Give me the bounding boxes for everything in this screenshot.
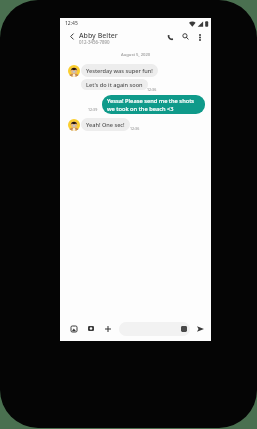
button[interactable]: Yeah! One sec! — [81, 118, 130, 131]
button[interactable]: Back — [65, 30, 78, 43]
button[interactable]: Call — [164, 31, 177, 44]
staticText: Let's do it again soon — [86, 81, 143, 89]
button[interactable]: Yessa! Please send me the shots we took … — [102, 95, 205, 114]
button[interactable]: Search — [179, 30, 192, 43]
staticText: 12:39 — [88, 107, 98, 112]
button[interactable]: Send — [194, 322, 207, 335]
button[interactable] — [119, 322, 190, 336]
button[interactable]: More options — [193, 31, 206, 44]
staticText: Abby Belter — [79, 31, 118, 41]
staticText: 12:45 — [65, 20, 78, 27]
button[interactable]: Gallery — [67, 322, 80, 335]
staticText: Yeah! One sec! — [86, 121, 125, 129]
staticText: 12:36 — [130, 126, 140, 131]
staticText: Yesterday was super fun! — [86, 67, 153, 75]
button[interactable]: Yesterday was super fun! — [81, 64, 158, 77]
staticText: Yessa! Please send me the shots we took … — [107, 97, 200, 112]
staticText: 012-3456-7890 — [79, 39, 110, 45]
staticText: 12:36 — [147, 87, 157, 92]
button[interactable]: Let's do it again soon — [81, 79, 148, 90]
button[interactable]: Camera — [84, 322, 97, 335]
button[interactable]: Add — [101, 322, 114, 335]
staticText: August 5, 2020 — [121, 52, 151, 58]
